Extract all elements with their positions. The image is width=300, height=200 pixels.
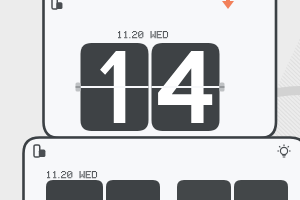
button[interactable] (43, 0, 300, 138)
button[interactable]: Layout (52, 0, 70, 14)
button[interactable]: Theme (277, 143, 297, 161)
button[interactable]: Flash (221, 0, 241, 14)
button[interactable]: Layout (33, 143, 53, 161)
